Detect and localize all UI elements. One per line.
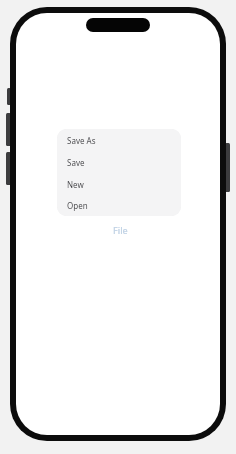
button[interactable]: File — [106, 222, 134, 238]
button[interactable]: Save — [57, 151, 181, 173]
staticText: Open — [67, 200, 88, 211]
staticText: New — [67, 179, 84, 190]
button[interactable]: Open — [57, 195, 181, 216]
staticText: Save As — [67, 135, 96, 146]
button[interactable]: New — [57, 173, 181, 195]
staticText: File — [113, 224, 128, 236]
staticText: Save — [67, 157, 85, 168]
button[interactable] — [86, 18, 150, 32]
button[interactable]: Save As — [57, 129, 181, 151]
